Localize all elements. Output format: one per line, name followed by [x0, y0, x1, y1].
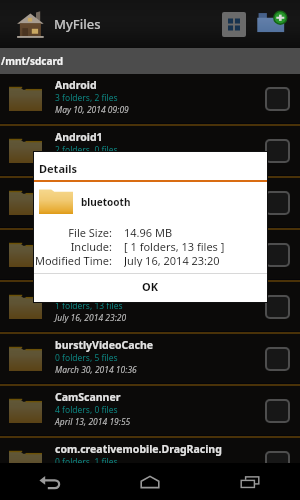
- staticText: 2 folders, 0 files: [55, 144, 118, 156]
- button[interactable]: New folder: [256, 11, 288, 37]
- staticText: 0 folders, 5 files: [55, 352, 118, 364]
- button[interactable]: com.creativemobile.DragRacing: [0, 438, 300, 490]
- staticText: 3 folders, 2 files: [55, 92, 118, 104]
- button[interactable]: Select: [265, 399, 290, 423]
- button[interactable]: Select: [265, 243, 290, 267]
- staticText: June 02, 2014 11:02: [55, 208, 130, 220]
- button[interactable]: Select: [265, 295, 290, 319]
- staticText: 1 folders, 13 files: [55, 300, 123, 312]
- staticText: Android1: [55, 130, 103, 144]
- button[interactable]: Select: [265, 451, 290, 475]
- staticText: backups: [55, 182, 99, 196]
- button[interactable]: OK: [34, 274, 267, 302]
- staticText: File Size:: [34, 225, 112, 239]
- staticText: April 13, 2014 19:55: [55, 416, 131, 428]
- button[interactable]: Select: [265, 347, 290, 371]
- staticText: April 2, 2014 10:20: [55, 468, 126, 480]
- button[interactable]: Android: [0, 74, 300, 126]
- staticText: July 16, 2014 23:20: [55, 156, 127, 168]
- button[interactable]: CamScanner: [0, 386, 300, 438]
- staticText: July 16, 2014 23:20: [55, 312, 127, 324]
- staticText: Include:: [34, 239, 112, 253]
- staticText: July 16, 2014 23:20: [124, 253, 220, 267]
- staticText: 4 folders, 0 files: [55, 404, 118, 416]
- staticText: July 16, 2014 23:20: [55, 260, 127, 272]
- button[interactable]: backups: [0, 178, 300, 230]
- staticText: March 30, 2014 10:36: [55, 364, 137, 376]
- staticText: bluetooth: [55, 234, 107, 248]
- staticText: 0 folders, 1 files: [55, 456, 118, 468]
- button[interactable]: burstlyVideoCache: [0, 334, 300, 386]
- staticText: 14.96 MB: [124, 225, 173, 239]
- button[interactable]: Back: [0, 463, 100, 500]
- staticText: MyFiles: [54, 15, 101, 33]
- button[interactable]: bluetooth: [0, 230, 300, 282]
- button[interactable]: Select: [265, 87, 290, 111]
- button[interactable]: Select: [265, 139, 290, 163]
- staticText: Modified Time:: [34, 253, 112, 267]
- staticText: May 10, 2014 09:09: [55, 104, 129, 116]
- staticText: 0 folders, 4 files: [55, 196, 118, 208]
- button[interactable]: Grid view: [222, 12, 246, 37]
- staticText: 1 folders, 13 files: [55, 248, 123, 260]
- staticText: Android: [55, 78, 97, 92]
- staticText: com.creativemobile.DragRacing: [55, 442, 222, 456]
- button[interactable]: Recents: [200, 463, 300, 500]
- staticText: CamScanner: [55, 390, 121, 404]
- staticText: burstlyVideoCache: [55, 338, 154, 352]
- staticText: bluetooth: [81, 195, 131, 209]
- button[interactable]: Android1: [0, 126, 300, 178]
- staticText: /mnt/sdcard: [1, 54, 63, 68]
- button[interactable]: bluetooth: [0, 282, 300, 334]
- staticText: [ 1 folders, 13 files ]: [124, 239, 225, 253]
- staticText: OK: [142, 279, 159, 294]
- button[interactable]: Select: [265, 191, 290, 215]
- button[interactable]: Home: [100, 463, 200, 500]
- staticText: Details: [39, 161, 78, 176]
